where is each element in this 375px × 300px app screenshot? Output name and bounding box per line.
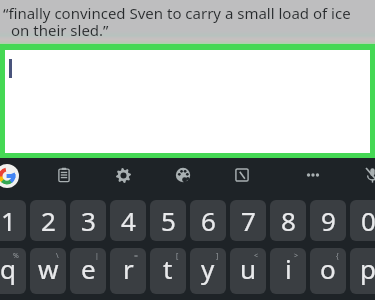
button[interactable]: r: [110, 248, 146, 294]
button[interactable]: u: [230, 248, 266, 294]
staticText: 3: [81, 203, 96, 238]
staticText: =: [134, 251, 139, 261]
staticText: [: [176, 251, 179, 261]
staticText: 1: [1, 203, 16, 238]
button[interactable]: 2: [30, 200, 66, 241]
button[interactable]: 8: [270, 200, 306, 241]
staticText: |: [95, 251, 99, 261]
button[interactable]: Microphone off: [358, 161, 375, 189]
staticText: 5: [161, 203, 176, 238]
staticText: o: [320, 251, 336, 286]
button[interactable]: w: [30, 248, 66, 294]
staticText: ]: [216, 251, 219, 261]
staticText: e: [81, 251, 96, 286]
staticText: 6: [201, 203, 216, 238]
button[interactable]: 3: [70, 200, 106, 241]
button[interactable]: y: [190, 248, 226, 294]
staticText: 8: [281, 203, 296, 238]
button[interactable]: More options: [299, 161, 327, 189]
staticText: t: [163, 251, 173, 286]
staticText: p: [360, 251, 375, 286]
button[interactable]: Stickers: [228, 161, 256, 189]
button[interactable]: e: [70, 248, 106, 294]
button[interactable]: i: [270, 248, 306, 294]
staticText: i: [285, 251, 292, 286]
staticText: r: [123, 251, 134, 286]
staticText: u: [240, 251, 257, 286]
button[interactable]: Clipboard: [50, 161, 78, 189]
staticText: q: [0, 251, 16, 286]
button[interactable]: 1: [0, 200, 26, 241]
staticText: <: [254, 251, 259, 261]
staticText: >: [294, 251, 299, 261]
button[interactable]: 6: [190, 200, 226, 241]
button[interactable]: p: [350, 248, 375, 294]
staticText: {: [336, 251, 339, 261]
button[interactable]: 0: [350, 200, 375, 241]
button[interactable]: q: [0, 248, 26, 294]
button[interactable]: t: [150, 248, 186, 294]
staticText: 7: [241, 203, 256, 238]
button[interactable]: 9: [310, 200, 346, 241]
staticText: %: [13, 251, 19, 261]
staticText: y: [201, 251, 215, 286]
staticText: 4: [121, 203, 136, 238]
staticText: 0: [361, 203, 375, 238]
staticText: “finally convinced Sven to carry a small…: [3, 3, 351, 23]
button[interactable]: [5, 50, 370, 153]
button[interactable]: Theme: [169, 161, 197, 189]
button[interactable]: o: [310, 248, 346, 294]
staticText: on their sled.”: [11, 20, 109, 40]
staticText: w: [38, 251, 59, 286]
button[interactable]: Google: [0, 164, 19, 188]
button[interactable]: Settings: [109, 161, 137, 189]
staticText: 2: [41, 203, 56, 238]
staticText: 9: [321, 203, 336, 238]
button[interactable]: 7: [230, 200, 266, 241]
button[interactable]: 5: [150, 200, 186, 241]
staticText: \: [56, 251, 59, 261]
button[interactable]: 4: [110, 200, 146, 241]
